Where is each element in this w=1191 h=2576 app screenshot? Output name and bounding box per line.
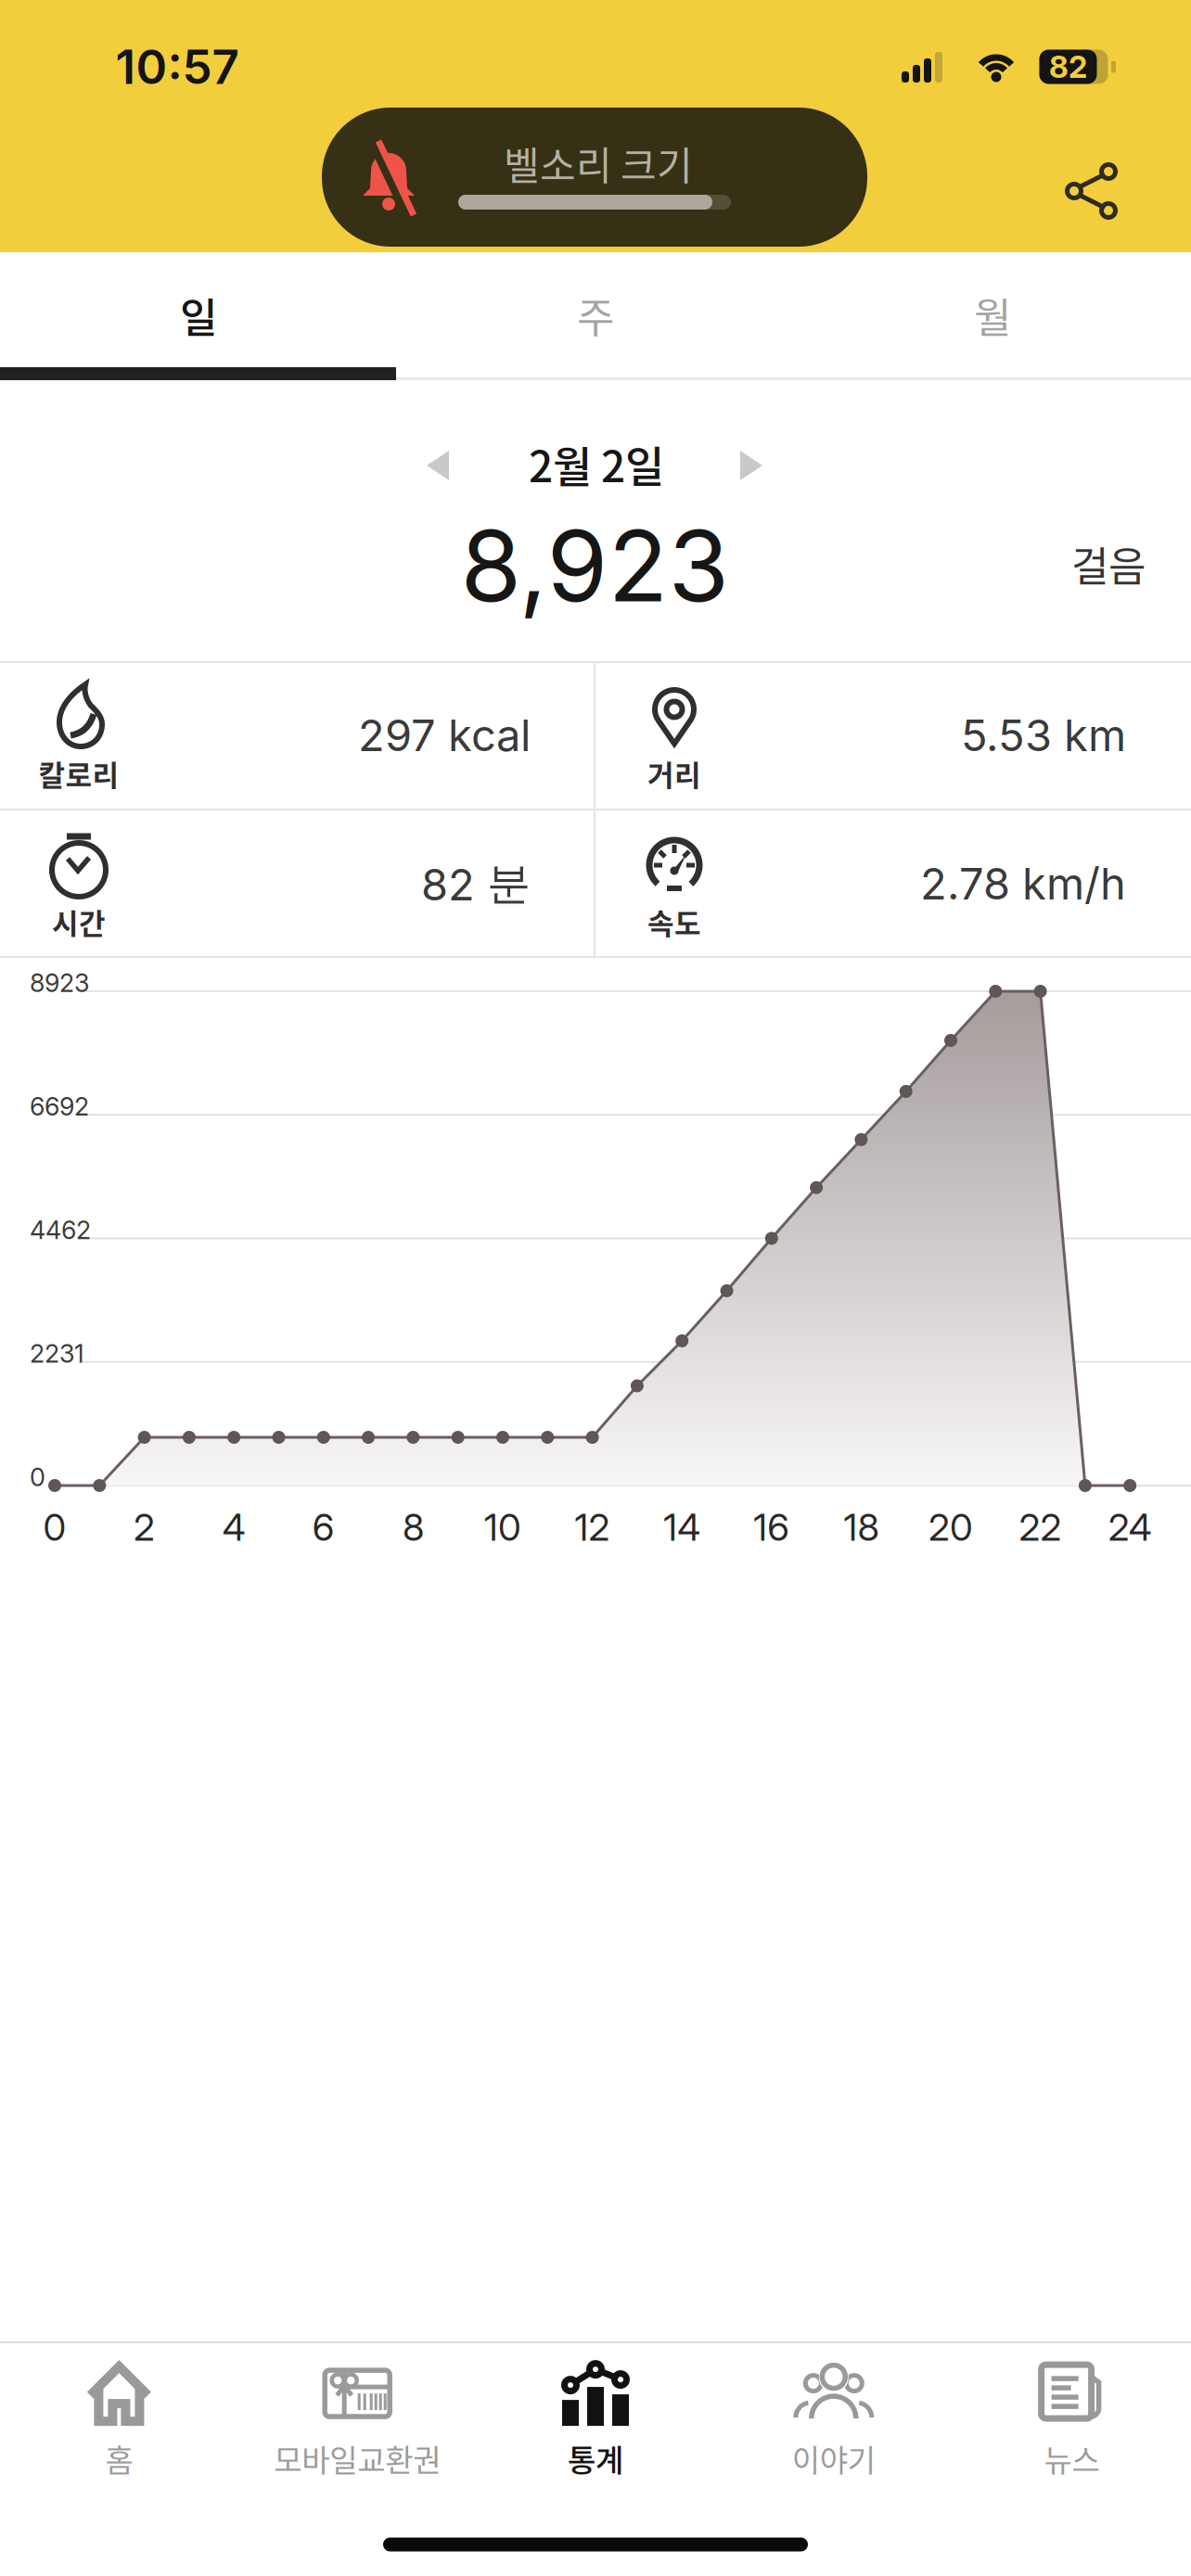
staticText: 일 bbox=[180, 286, 217, 345]
staticText: 0 bbox=[43, 1505, 66, 1550]
staticText: 16 bbox=[753, 1505, 790, 1550]
staticText: 8923 bbox=[30, 968, 89, 998]
staticText: 20 bbox=[928, 1505, 973, 1550]
button[interactable]: 이야기 bbox=[715, 2346, 953, 2494]
staticText: 거리 bbox=[647, 753, 701, 794]
staticText: 10 bbox=[484, 1505, 521, 1550]
staticText: 속도 bbox=[647, 901, 701, 943]
button[interactable]: 주 bbox=[397, 258, 794, 373]
staticText: 2231 bbox=[30, 1338, 84, 1369]
staticText: 벨소리 크기 bbox=[504, 135, 693, 191]
staticText: 2 bbox=[134, 1505, 155, 1550]
staticText: 14 bbox=[663, 1505, 701, 1550]
staticText: 24 bbox=[1108, 1505, 1152, 1550]
staticText: 10:57 bbox=[115, 38, 239, 95]
staticText: 이야기 bbox=[792, 2436, 875, 2480]
staticText: 4 bbox=[222, 1505, 246, 1550]
staticText: 주 bbox=[577, 286, 614, 345]
staticText: 12 bbox=[575, 1505, 610, 1550]
staticText: 297 kcal bbox=[358, 709, 531, 762]
button[interactable]: 통계 bbox=[476, 2346, 715, 2494]
staticText: 18 bbox=[844, 1505, 879, 1550]
staticText: 6692 bbox=[30, 1091, 89, 1122]
staticText: 82 bbox=[1049, 48, 1087, 85]
staticText: 8,923 bbox=[461, 506, 729, 625]
staticText: 4462 bbox=[30, 1215, 91, 1245]
staticText: 걸음 bbox=[1071, 534, 1146, 593]
staticText: 칼로리 bbox=[38, 753, 119, 794]
staticText: 82 분 bbox=[421, 856, 531, 911]
button[interactable]: 공유 bbox=[1065, 159, 1119, 223]
button[interactable]: 다음 날짜 bbox=[740, 451, 762, 480]
staticText: 6 bbox=[312, 1505, 335, 1550]
staticText: 22 bbox=[1019, 1505, 1062, 1550]
button[interactable]: 이전 날짜 bbox=[427, 451, 449, 480]
staticText: 시간 bbox=[52, 901, 106, 943]
staticText: 2.78 km/h bbox=[920, 857, 1126, 910]
staticText: 통계 bbox=[568, 2436, 623, 2480]
button[interactable]: 홈 bbox=[0, 2346, 238, 2494]
staticText: 뉴스 bbox=[1044, 2436, 1100, 2480]
staticText: 8 bbox=[402, 1505, 424, 1550]
staticText: 월 bbox=[974, 286, 1011, 345]
button[interactable]: 뉴스 bbox=[953, 2346, 1191, 2494]
staticText: 2월 2일 bbox=[529, 433, 664, 495]
staticText: 모바일교환권 bbox=[274, 2436, 441, 2480]
button[interactable]: 월 bbox=[794, 258, 1191, 373]
staticText: 0 bbox=[30, 1462, 45, 1492]
staticText: 홈 bbox=[105, 2436, 133, 2480]
staticText: 5.53 km bbox=[961, 709, 1126, 762]
button[interactable]: 일 bbox=[0, 258, 397, 373]
button[interactable]: 모바일교환권 bbox=[238, 2346, 476, 2494]
